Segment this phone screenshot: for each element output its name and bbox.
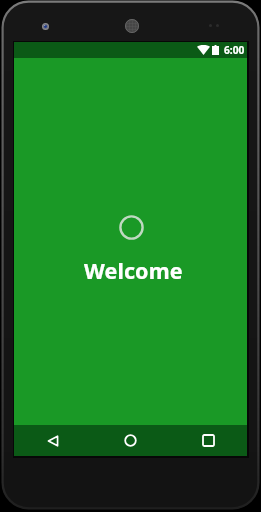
button[interactable]: Home (91, 425, 169, 456)
button[interactable]: Recent apps (169, 425, 247, 456)
staticText: Welcome (84, 256, 183, 285)
button[interactable]: Back (14, 425, 91, 456)
staticText: 6:00 (224, 43, 245, 57)
